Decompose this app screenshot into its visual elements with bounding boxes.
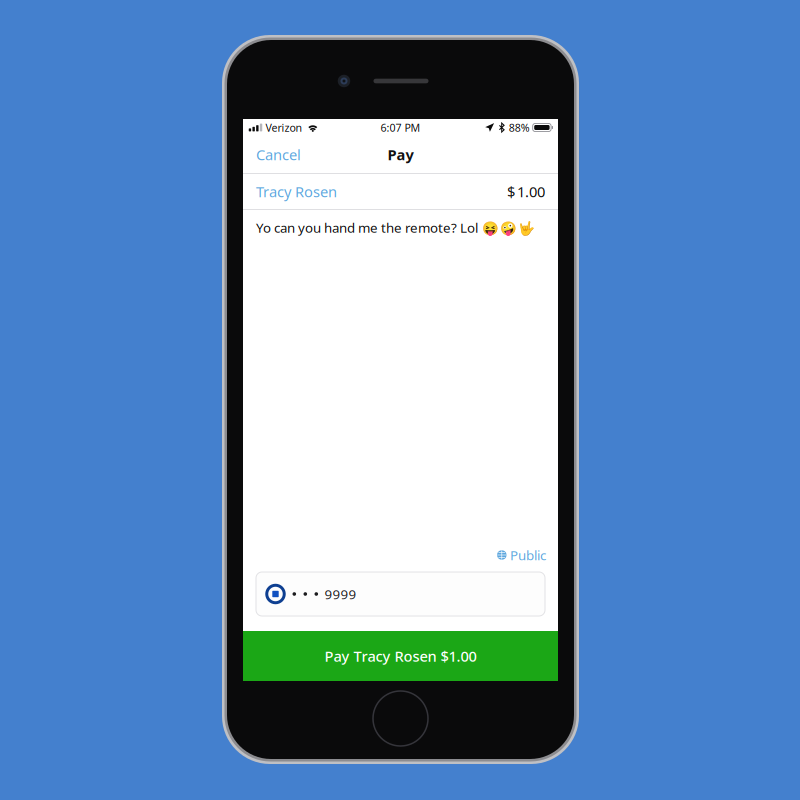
staticText: 9999: [325, 585, 357, 603]
staticText: Pay: [387, 145, 413, 164]
staticText: Verizon: [265, 120, 302, 135]
button[interactable]: 9999: [256, 572, 545, 616]
button[interactable]: Cancel: [243, 136, 314, 173]
button[interactable]: Tracy Rosen: [243, 174, 558, 209]
staticText: $ 1.00: [507, 182, 545, 201]
staticText: Cancel: [256, 145, 301, 164]
staticText: Yo can you hand me the remote? Lol 😝 🤪 🤟: [256, 219, 535, 236]
staticText: Public: [510, 546, 546, 564]
staticText: 88%: [509, 120, 530, 135]
staticText: Tracy Rosen: [256, 182, 337, 201]
staticText: Pay Tracy Rosen $1.00: [324, 646, 476, 666]
button[interactable]: Pay Tracy Rosen $1.00: [243, 631, 558, 681]
staticText: 6:07 PM: [380, 120, 420, 135]
button[interactable]: Public: [497, 547, 558, 563]
